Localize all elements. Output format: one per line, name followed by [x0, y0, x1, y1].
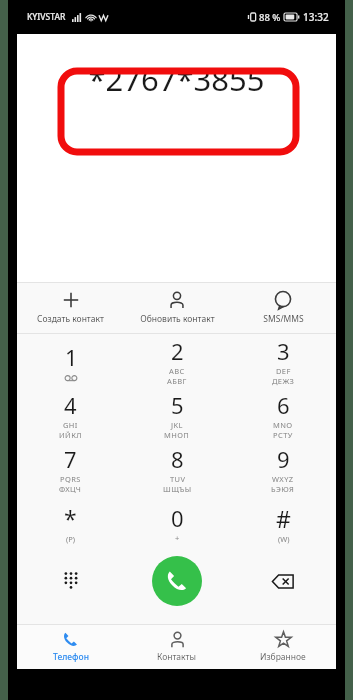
staticText: РСТУ [273, 430, 293, 440]
staticText: TUV [170, 474, 186, 484]
staticText: MNO [273, 420, 293, 430]
staticText: 5 [171, 390, 184, 420]
button[interactable]: Телефон [17, 625, 124, 669]
staticText: PQRS [60, 474, 81, 484]
staticText: (W) [278, 534, 290, 544]
staticText: Создать контакт [37, 313, 104, 325]
button[interactable]: 9 [230, 442, 336, 496]
button[interactable]: SMS/MMS [230, 282, 336, 334]
button[interactable]: 6 [230, 388, 336, 442]
button[interactable]: Call [152, 556, 202, 606]
staticText: ДЕЖЗ [272, 376, 295, 386]
button[interactable]: 5 [124, 388, 230, 442]
staticText: Избранное [260, 651, 306, 663]
button[interactable]: Создать контакт [17, 282, 124, 334]
staticText: WXYZ [272, 474, 294, 484]
staticText: GHI [63, 420, 78, 430]
button[interactable]: 3 [230, 334, 336, 388]
staticText: * [64, 503, 77, 534]
staticText: 9 [277, 444, 290, 474]
staticText: Обновить контакт [140, 313, 215, 325]
staticText: АБВГ [167, 376, 187, 386]
staticText: 2 [171, 336, 184, 366]
staticText: 13:32 [303, 10, 329, 24]
staticText: МНОП [164, 430, 190, 440]
staticText: (P) [66, 534, 76, 544]
button[interactable]: Dialpad [17, 554, 124, 608]
button[interactable]: 8 [124, 442, 230, 496]
staticText: Контакты [157, 651, 197, 663]
staticText: SMS/MMS [263, 313, 304, 325]
staticText: Телефон [53, 651, 89, 663]
staticText: 4 [64, 390, 77, 420]
staticText: ЬЭЮЯ [271, 484, 295, 494]
button[interactable]: 0 [124, 496, 230, 550]
staticText: 3 [277, 336, 290, 366]
staticText: 6 [277, 390, 290, 420]
staticText: 88 % [259, 11, 281, 24]
button[interactable]: 2 [124, 334, 230, 388]
button[interactable]: 4 [17, 388, 124, 442]
button[interactable]: Обновить контакт [124, 282, 230, 334]
staticText: ABC [169, 366, 185, 376]
staticText: DEF [276, 366, 291, 376]
staticText: ШЩЪЫ [163, 484, 192, 494]
button[interactable]: * [17, 496, 124, 550]
staticText: 7 [64, 444, 77, 474]
staticText: 8 [171, 444, 184, 474]
staticText: JKL [171, 420, 183, 430]
staticText: # [276, 503, 291, 534]
staticText: 1 [65, 342, 78, 372]
button[interactable]: # [230, 496, 336, 550]
button[interactable]: Backspace [230, 554, 336, 608]
button[interactable]: 1 [17, 334, 124, 388]
staticText: + [175, 533, 180, 543]
staticText: 0 [171, 503, 184, 533]
button[interactable]: Контакты [124, 625, 230, 669]
button[interactable]: 7 [17, 442, 124, 496]
staticText: KYIVSTAR [27, 11, 66, 23]
staticText: ИЙКЛ [59, 430, 82, 440]
staticText: *2767*3855 [88, 58, 265, 100]
staticText: ФХЦЧ [59, 484, 82, 494]
button[interactable]: Избранное [230, 625, 336, 669]
